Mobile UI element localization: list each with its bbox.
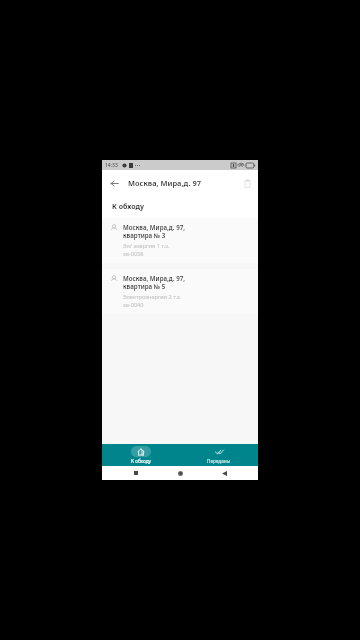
button[interactable]: Удалить [236,172,258,194]
button[interactable]: Переданы [180,444,258,466]
staticText: зв-0038 [123,250,144,258]
staticText: Переданы [207,458,231,464]
button[interactable]: Обзор [129,466,143,480]
button[interactable]: Назад [102,171,126,195]
staticText: К обходу [131,458,151,464]
staticText: зв-0040 [123,301,144,309]
button[interactable]: Москва, Мира,д. 97, [102,269,258,314]
button[interactable]: К обходу [102,444,180,466]
staticText: квартира № 3 [123,231,166,239]
staticText: Москва, Мира,д. 97, [123,223,185,231]
staticText: Электроэнергия 2 т.з. [123,293,182,301]
button[interactable]: Назад [217,466,231,480]
staticText: К обходу [112,202,144,212]
button[interactable]: Главный экран [173,466,187,480]
staticText: Эл/ энергия 1 т.з. [123,242,170,250]
staticText: квартира № 5 [123,282,166,290]
staticText: Москва, Мира,д. 97 [128,178,236,188]
staticText: Москва, Мира,д. 97, [123,274,185,282]
staticText: 14:33 [105,162,118,169]
button[interactable]: Москва, Мира,д. 97, [102,218,258,263]
